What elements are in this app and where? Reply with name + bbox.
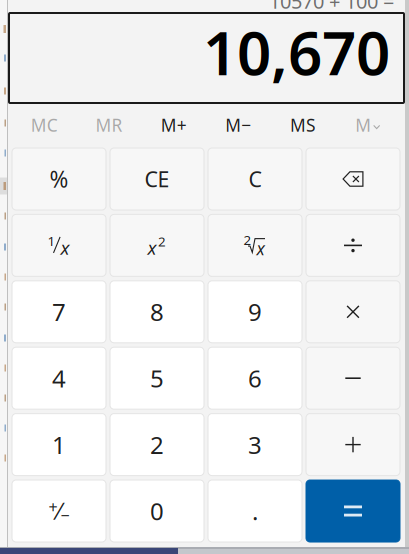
staticText: − (60, 504, 69, 526)
staticText: M− (225, 113, 251, 136)
button[interactable]: Reciprocal (12, 214, 106, 276)
button[interactable] (110, 281, 204, 343)
button[interactable]: Square (110, 214, 204, 276)
staticText: 0 (150, 495, 164, 527)
staticText: 2 (150, 429, 164, 461)
staticText: C (248, 165, 261, 193)
staticText: x (256, 237, 264, 260)
staticText: 1 (47, 232, 55, 250)
staticText: 10,670 (203, 12, 390, 92)
staticText: % (49, 164, 68, 194)
staticText: 3 (248, 429, 262, 461)
button[interactable] (208, 414, 302, 476)
button[interactable]: MR (77, 108, 141, 142)
button[interactable]: Percent (12, 148, 106, 210)
staticText: M (355, 113, 371, 136)
staticText: 7 (52, 296, 66, 328)
staticText: 8 (150, 296, 164, 328)
button[interactable]: Memory (335, 108, 400, 142)
button[interactable] (110, 347, 204, 409)
staticText: M+ (161, 113, 187, 136)
button[interactable]: Plus (306, 414, 400, 476)
button[interactable] (110, 480, 204, 542)
button[interactable]: Divide (306, 214, 400, 276)
staticText: ⁄ (57, 496, 60, 526)
staticText: x (60, 235, 69, 260)
button[interactable]: M− (206, 108, 271, 142)
staticText: 6 (248, 362, 262, 394)
staticText: 9 (248, 296, 262, 328)
button[interactable] (12, 414, 106, 476)
staticText: x (147, 235, 156, 260)
button[interactable]: Minus (306, 347, 400, 409)
button[interactable]: Backspace (306, 148, 400, 210)
staticText: MC (31, 113, 58, 136)
button[interactable] (110, 148, 204, 210)
staticText: 5 (150, 362, 164, 394)
staticText: CE (144, 165, 169, 193)
staticText: MS (290, 113, 316, 136)
staticText: . (252, 495, 258, 527)
button[interactable] (208, 148, 302, 210)
button[interactable] (110, 414, 204, 476)
button[interactable]: Equals (306, 480, 400, 542)
staticText: 2 (158, 232, 166, 250)
button[interactable]: MS (271, 108, 335, 142)
button[interactable] (12, 347, 106, 409)
staticText: 1 (52, 429, 66, 461)
staticText: 10570 + 100 = (269, 0, 394, 14)
button[interactable]: Multiply (306, 281, 400, 343)
staticText: 4 (52, 362, 66, 394)
button[interactable] (208, 281, 302, 343)
button[interactable] (208, 347, 302, 409)
button[interactable]: MC (12, 108, 77, 142)
button[interactable]: Square root (208, 214, 302, 276)
button[interactable] (208, 480, 302, 542)
staticText: + (48, 496, 57, 518)
button[interactable] (12, 281, 106, 343)
staticText: 2 (243, 231, 251, 249)
button[interactable]: M+ (141, 108, 206, 142)
button[interactable]: Positive negative (12, 480, 106, 542)
staticText: MR (95, 113, 122, 136)
